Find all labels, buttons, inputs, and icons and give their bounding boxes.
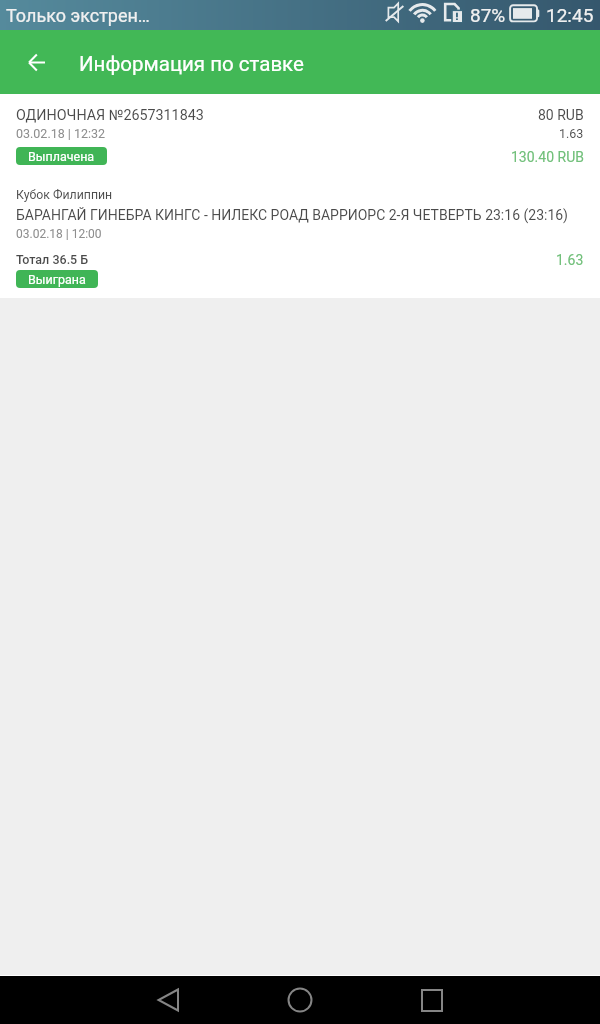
staticText: 1.63 — [556, 252, 584, 268]
staticText: Кубок Филиппин — [16, 188, 113, 202]
staticText: Информация по ставке — [79, 52, 304, 76]
staticText: 03.02.18 | 12:00 — [16, 227, 102, 241]
staticText: Выиграна — [28, 272, 86, 287]
staticText: 1.63 — [559, 126, 584, 141]
staticText: Тотал 36.5 Б — [16, 252, 89, 267]
staticText: 80 RUB — [538, 107, 584, 123]
button[interactable]: Home — [234, 976, 366, 1024]
staticText: 12:45 — [546, 4, 594, 26]
button[interactable]: Recents — [366, 976, 498, 1024]
staticText: Выплачена — [28, 149, 95, 164]
button[interactable]: Выплачена — [16, 147, 107, 165]
button[interactable]: Выиграна — [16, 270, 98, 288]
button[interactable]: Назад — [16, 42, 56, 82]
staticText: БАРАНГАЙ ГИНЕБРА КИНГС - НИЛЕКС РОАД ВАР… — [16, 207, 568, 223]
staticText: ОДИНОЧНАЯ №2657311843 — [16, 107, 204, 124]
staticText: 130.40 RUB — [511, 149, 584, 165]
staticText: 03.02.18 | 12:32 — [16, 126, 106, 141]
staticText: Только экстрен… — [6, 5, 150, 26]
staticText: 87% — [470, 4, 506, 26]
button[interactable]: Back — [102, 976, 234, 1024]
